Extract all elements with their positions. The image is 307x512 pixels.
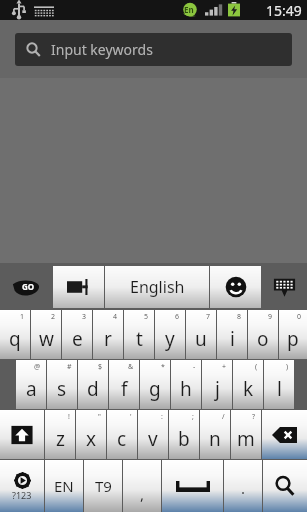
staticText: w	[39, 326, 54, 352]
staticText: :	[161, 412, 163, 422]
staticText: '	[130, 412, 132, 422]
staticText: m	[237, 426, 255, 452]
staticText: 6	[175, 312, 180, 322]
button[interactable]: '	[107, 410, 137, 459]
staticText: ;	[192, 412, 194, 422]
staticText: ?123	[12, 489, 32, 501]
staticText: ?	[252, 412, 256, 422]
button[interactable]: $	[78, 360, 108, 409]
staticText: g	[149, 376, 161, 402]
button[interactable]: @	[16, 360, 46, 409]
staticText: GO	[22, 281, 35, 292]
staticText: z	[56, 426, 65, 452]
button[interactable]: Search	[263, 460, 307, 512]
staticText: @	[34, 362, 41, 372]
staticText: b	[178, 426, 190, 452]
staticText: *	[161, 362, 165, 372]
button[interactable]: *	[140, 360, 170, 409]
button[interactable]: Hide keyboard	[261, 266, 307, 308]
staticText: a	[26, 376, 37, 402]
button[interactable]: ,	[123, 460, 161, 512]
staticText: 2	[51, 312, 56, 322]
staticText: 5	[144, 312, 149, 322]
button[interactable]: (	[233, 360, 263, 409]
button[interactable]: GO Keyboard menu	[0, 266, 53, 308]
button[interactable]: 9	[248, 310, 278, 359]
staticText: $	[98, 362, 103, 372]
staticText: 15:49	[266, 1, 302, 20]
button[interactable]: /	[200, 410, 230, 459]
button[interactable]: T9	[84, 460, 122, 512]
staticText: x	[86, 426, 97, 452]
staticText: 3	[82, 312, 87, 322]
staticText: j	[215, 376, 220, 402]
button[interactable]: 0	[279, 310, 307, 359]
staticText: 4	[113, 312, 118, 322]
staticText: t	[136, 326, 143, 352]
button[interactable]: &	[109, 360, 139, 409]
staticText: EN	[54, 476, 74, 496]
staticText: -	[193, 362, 196, 372]
staticText: o	[257, 326, 269, 352]
staticText: c	[117, 426, 127, 452]
button[interactable]: .	[224, 460, 262, 512]
staticText: ,	[140, 484, 145, 504]
staticText: .	[241, 478, 246, 498]
staticText: Input keywords	[51, 40, 153, 59]
button[interactable]: EN	[45, 460, 83, 512]
button[interactable]: -	[171, 360, 201, 409]
staticText: 7	[206, 312, 211, 322]
button[interactable]: 3	[62, 310, 92, 359]
button[interactable]: 1	[0, 310, 30, 359]
staticText: q	[9, 326, 21, 352]
staticText: f	[121, 376, 128, 402]
staticText: p	[287, 326, 299, 352]
button[interactable]: :	[138, 410, 168, 459]
staticText: En	[184, 4, 194, 15]
button[interactable]: !	[45, 410, 75, 459]
button[interactable]: 2	[31, 310, 61, 359]
button[interactable]: Backspace	[262, 410, 307, 459]
staticText: l	[277, 376, 282, 402]
button[interactable]: Emoji	[210, 266, 261, 308]
button[interactable]: 5	[124, 310, 154, 359]
staticText: u	[195, 326, 207, 352]
button[interactable]: "	[76, 410, 106, 459]
staticText: s	[57, 376, 67, 402]
staticText: 8	[237, 312, 242, 322]
staticText: English	[130, 276, 185, 298]
staticText: 0	[297, 312, 302, 322]
staticText: &	[128, 362, 134, 372]
staticText: +	[222, 362, 227, 372]
staticText: e	[72, 326, 83, 352]
button[interactable]: 8	[217, 310, 247, 359]
button[interactable]: )	[264, 360, 294, 409]
staticText: d	[87, 376, 99, 402]
button[interactable]: 4	[93, 310, 123, 359]
button[interactable]: Symbols	[0, 460, 44, 512]
staticText: (	[255, 362, 258, 372]
staticText: !	[68, 412, 70, 422]
button[interactable]: ?	[231, 410, 261, 459]
button[interactable]: Input keywords	[15, 33, 292, 66]
staticText: )	[286, 362, 289, 372]
staticText: /	[222, 412, 225, 422]
button[interactable]: 6	[155, 310, 185, 359]
staticText: y	[165, 326, 175, 352]
staticText: v	[148, 426, 158, 452]
staticText: k	[243, 376, 254, 402]
button[interactable]: #	[47, 360, 77, 409]
button[interactable]: Theme	[53, 266, 104, 308]
button[interactable]: English	[105, 266, 209, 308]
button[interactable]: Shift	[0, 410, 44, 459]
staticText: i	[230, 326, 235, 352]
button[interactable]: ;	[169, 410, 199, 459]
staticText: n	[209, 426, 221, 452]
staticText: h	[180, 376, 192, 402]
button[interactable]: Space	[162, 460, 223, 512]
button[interactable]: +	[202, 360, 232, 409]
button[interactable]: 7	[186, 310, 216, 359]
staticText: r	[104, 326, 112, 352]
staticText: #	[67, 362, 72, 372]
staticText: T9	[95, 476, 112, 496]
